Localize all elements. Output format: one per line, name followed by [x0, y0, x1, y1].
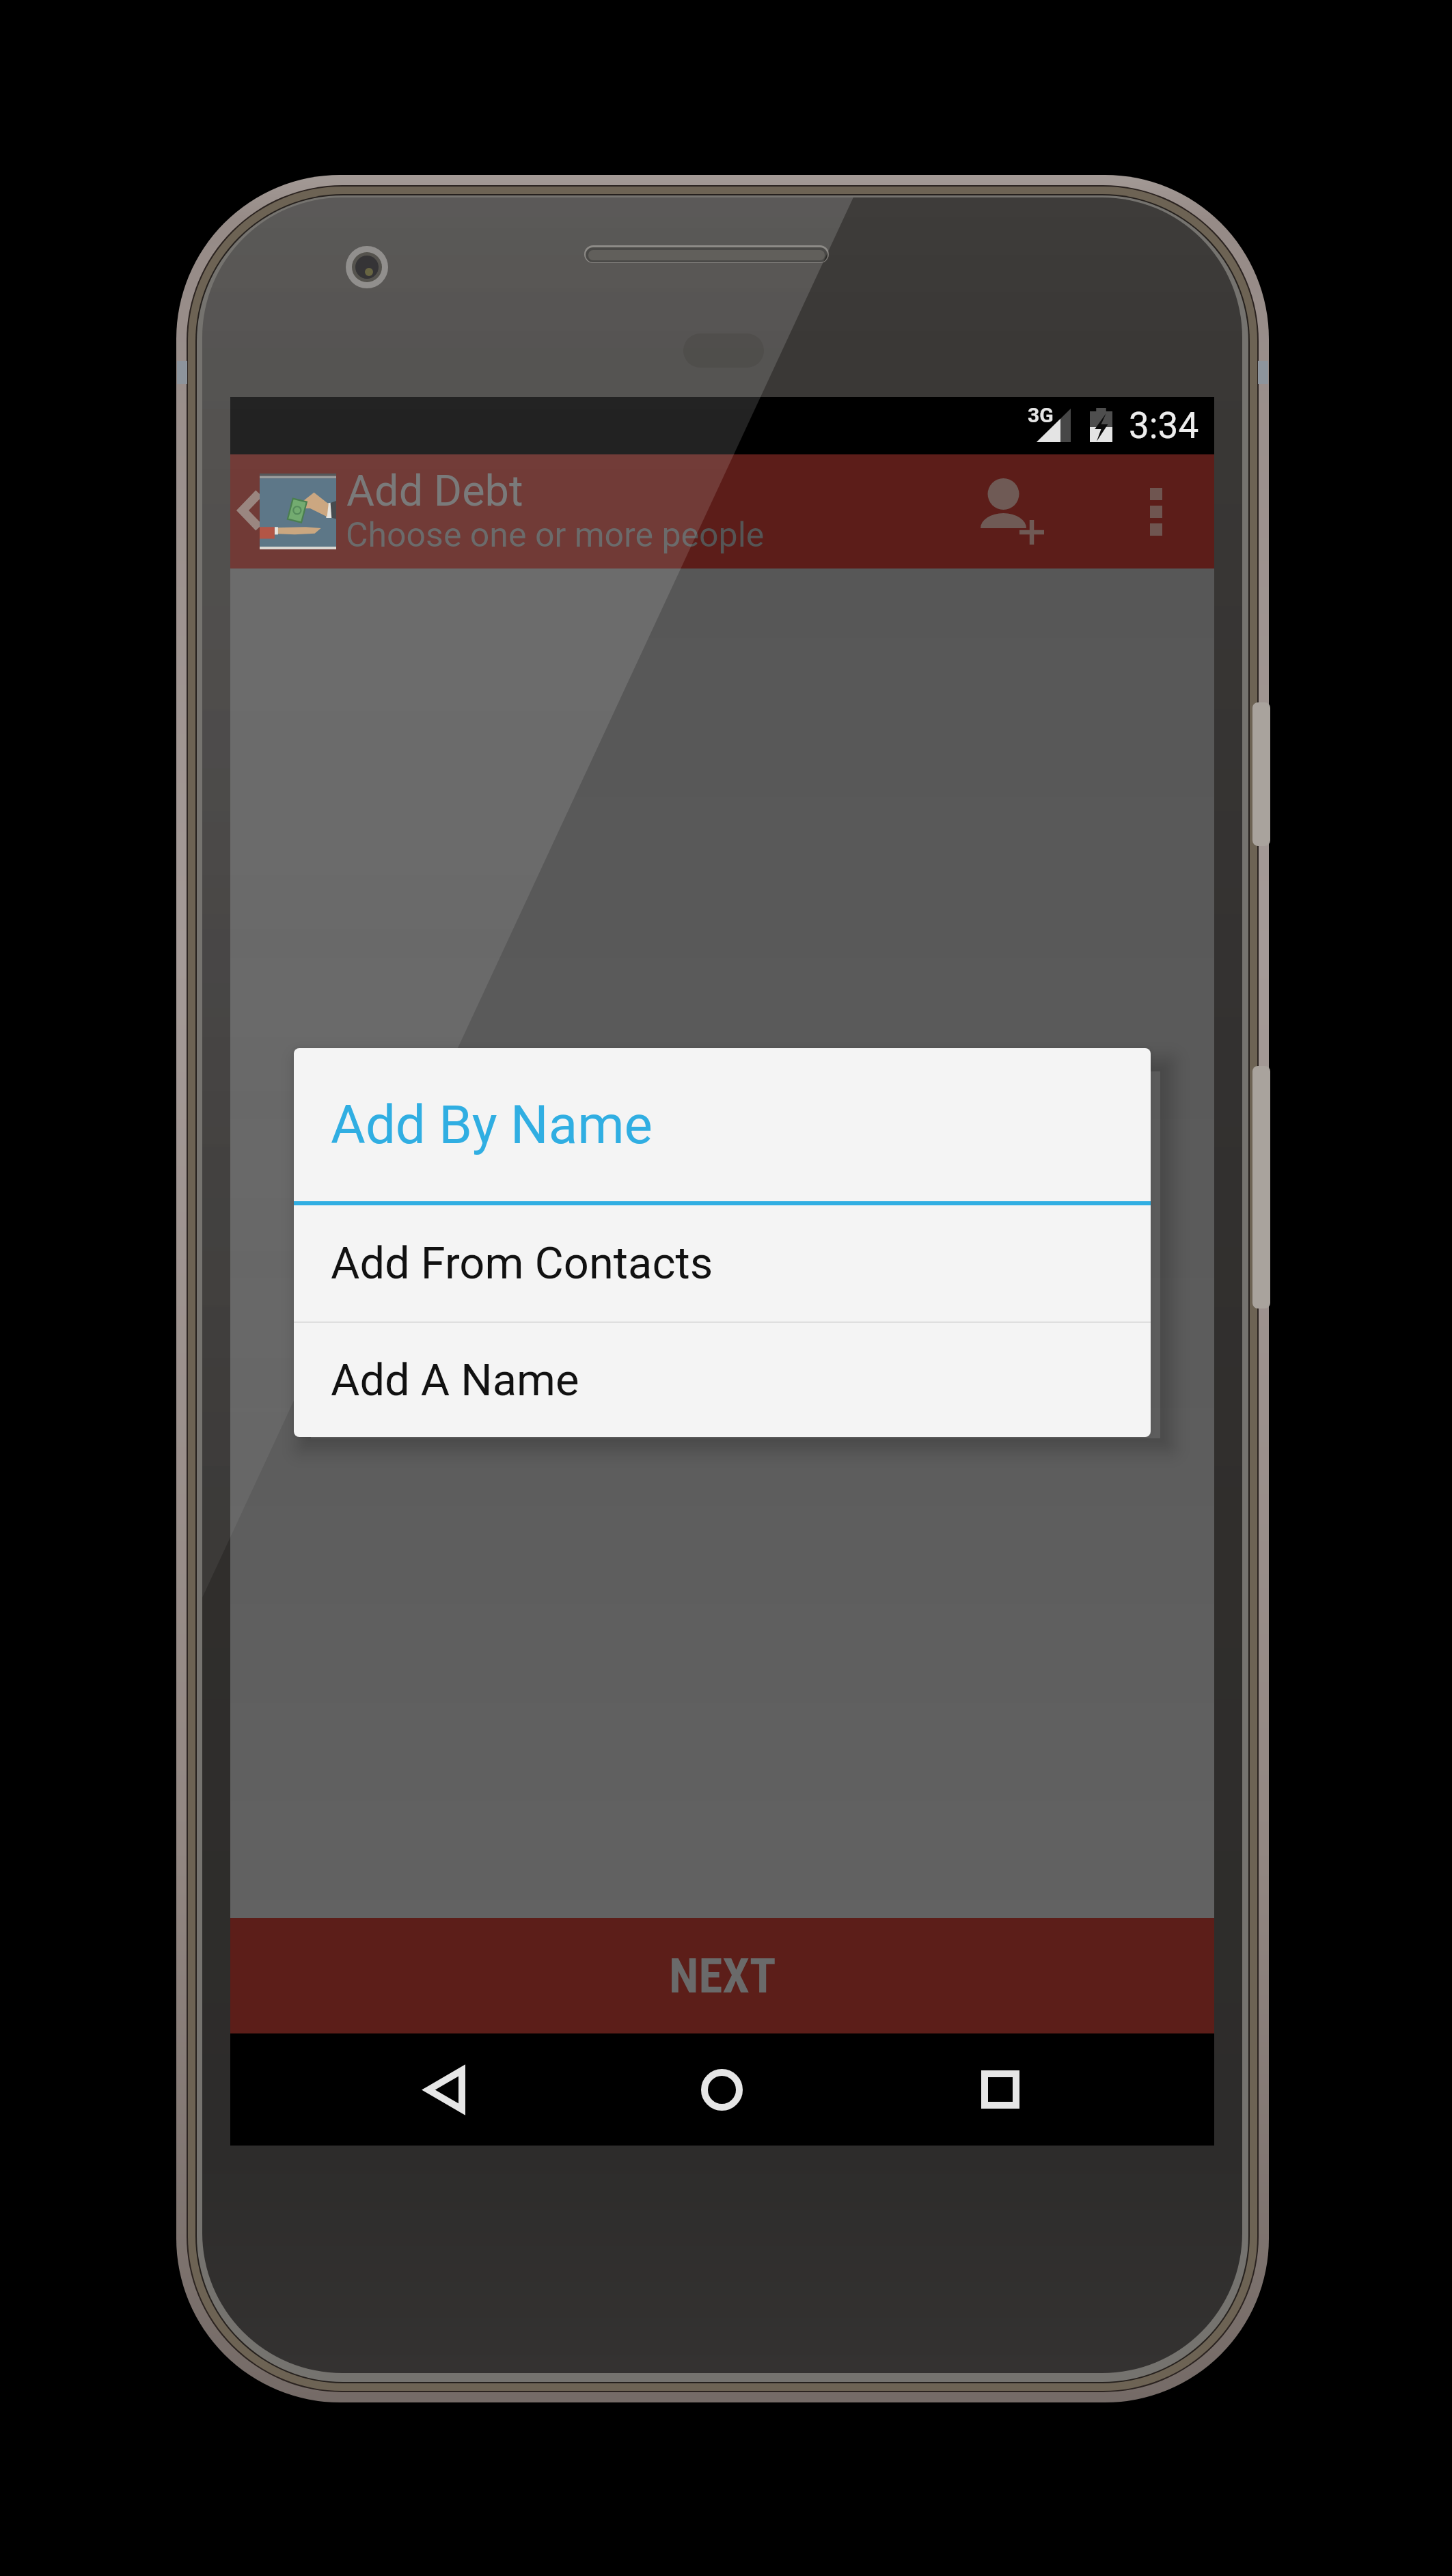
button[interactable]: Back: [363, 2033, 527, 2146]
button[interactable]: Add From Contacts: [294, 1205, 1151, 1321]
staticText: NEXT: [669, 1947, 776, 2004]
staticText: Choose one or more people: [346, 515, 765, 556]
button[interactable]: More options: [1093, 454, 1202, 568]
button[interactable]: Add A Name: [294, 1323, 1151, 1437]
button[interactable]: Home: [640, 2033, 804, 2146]
button[interactable]: Add person: [950, 454, 1074, 568]
staticText: Add From Contacts: [331, 1237, 713, 1289]
staticText: 3:34: [1129, 405, 1199, 447]
button[interactable]: Recents: [918, 2033, 1082, 2146]
staticText: Add By Name: [331, 1094, 653, 1156]
button[interactable]: Navigate up: [230, 454, 344, 568]
button[interactable]: NEXT: [230, 1918, 1214, 2033]
staticText: Add Debt: [346, 466, 523, 517]
staticText: 3G: [1028, 403, 1054, 427]
staticText: Add A Name: [331, 1354, 579, 1406]
